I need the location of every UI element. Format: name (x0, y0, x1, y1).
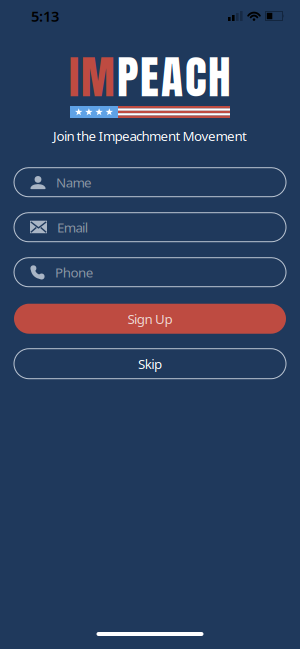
textField[interactable]: Name (14, 168, 286, 197)
staticText: Skip (138, 355, 162, 373)
staticText: A (161, 43, 183, 111)
staticText: Email (57, 218, 88, 236)
staticText: E (140, 43, 159, 111)
button[interactable]: Skip (14, 349, 286, 379)
staticText: Sign Up (127, 310, 173, 328)
textField[interactable]: Email (14, 213, 286, 242)
staticText: H (208, 43, 231, 111)
staticText: I (69, 43, 79, 111)
staticText: M (81, 43, 115, 111)
staticText: C (185, 43, 206, 111)
textField[interactable]: Phone (14, 258, 286, 287)
staticText: 5:13 (31, 6, 59, 26)
staticText: Name (56, 173, 92, 191)
button[interactable]: Sign Up (14, 304, 286, 334)
staticText: P (117, 43, 138, 111)
staticText: Join the Impeachment Movement (53, 127, 247, 145)
staticText: Phone (55, 263, 94, 281)
